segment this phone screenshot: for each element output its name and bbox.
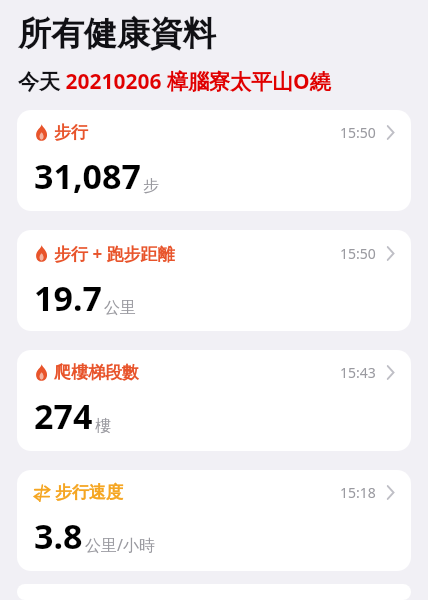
button[interactable]: 步行速度 <box>17 470 411 571</box>
staticText: 3.8 <box>34 513 83 559</box>
staticText: 步行 + 跑步距離 <box>54 242 175 265</box>
staticText: 公里/小時 <box>85 534 155 556</box>
staticText: 爬樓梯段數 <box>54 362 139 383</box>
staticText: 所有健康資料 <box>18 13 216 55</box>
staticText: 公里 <box>104 298 136 318</box>
staticText: 15:50 <box>340 244 376 263</box>
staticText: 今天 20210206 樟腦寮太平山O繞 <box>18 67 331 96</box>
staticText: 15:50 <box>340 123 376 142</box>
button[interactable]: 爬樓梯段數 <box>17 350 411 451</box>
staticText: 15:18 <box>340 483 376 502</box>
button[interactable]: 步行 <box>17 110 411 211</box>
staticText: 31,087 <box>34 153 141 199</box>
button[interactable]: 步行 + 跑步距離 <box>17 230 411 331</box>
staticText: 步 <box>143 176 159 196</box>
staticText: 274 <box>34 393 93 439</box>
staticText: 15:43 <box>340 363 376 382</box>
staticText: 步行 <box>54 122 88 143</box>
staticText: 19.7 <box>34 275 102 321</box>
staticText: 樓 <box>95 416 111 436</box>
staticText: 步行速度 <box>55 482 123 503</box>
